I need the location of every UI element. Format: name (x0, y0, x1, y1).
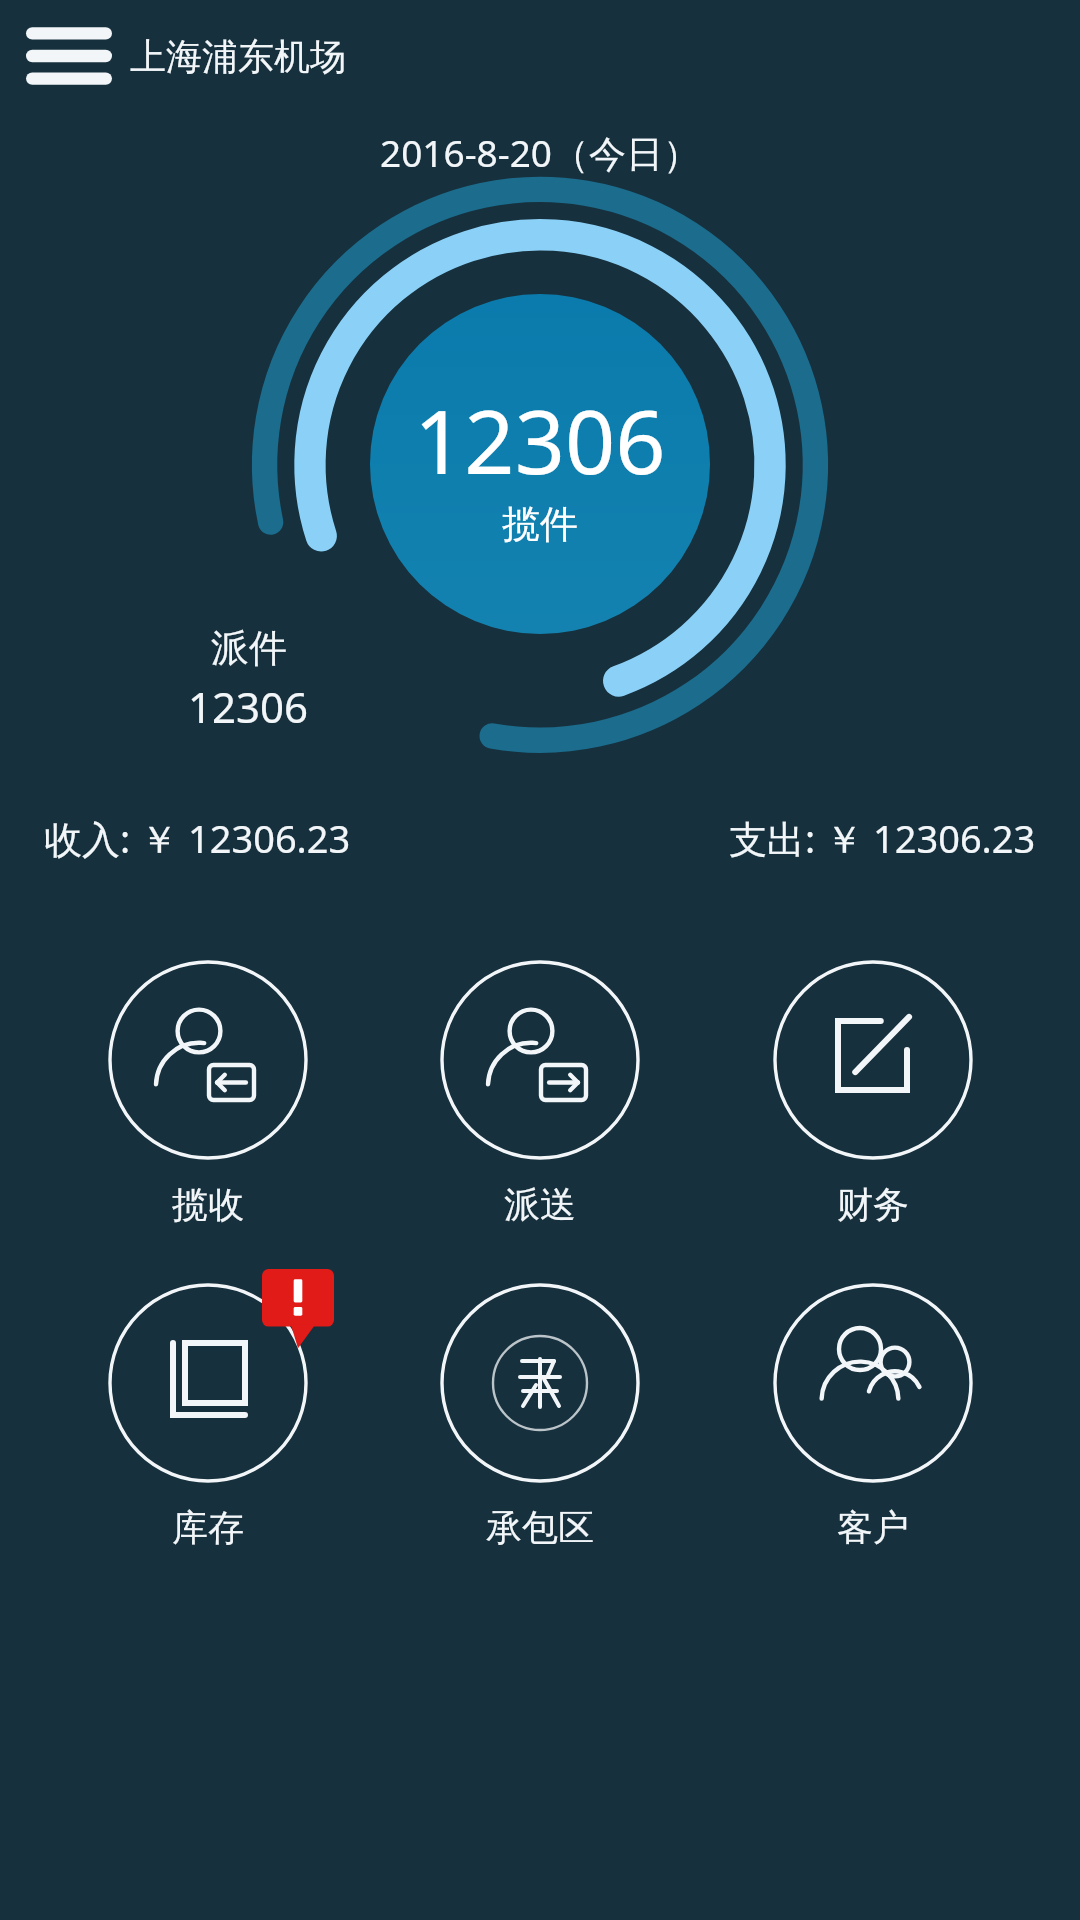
staticText: 揽件 (502, 500, 578, 548)
button[interactable]: Collect (83, 960, 333, 1227)
button[interactable]: Deliver (415, 960, 665, 1227)
staticText: 客户 (837, 1505, 909, 1550)
staticText: 收入: ￥ 12306.23 (44, 812, 351, 864)
staticText: 12306 (414, 380, 666, 500)
staticText: 承包区 (486, 1505, 594, 1550)
staticText: 派送 (504, 1182, 576, 1227)
button[interactable]: Contract area (415, 1283, 665, 1550)
button[interactable]: Inventory (83, 1283, 333, 1550)
button[interactable]: Customers (748, 1283, 998, 1550)
staticText: 揽收 (172, 1182, 244, 1227)
staticText: 派件 (211, 624, 287, 672)
button[interactable]: Finance (748, 960, 998, 1227)
button[interactable]: Menu (26, 17, 112, 95)
staticText: 上海浦东机场 (130, 34, 346, 79)
staticText: 2016-8-20（今日） (380, 127, 700, 178)
staticText: 支出: ￥ 12306.23 (729, 812, 1036, 864)
staticText: 库存 (172, 1505, 244, 1550)
staticText: 财务 (837, 1182, 909, 1227)
staticText: 12306 (188, 678, 309, 735)
button[interactable]: 12306 (370, 294, 710, 634)
